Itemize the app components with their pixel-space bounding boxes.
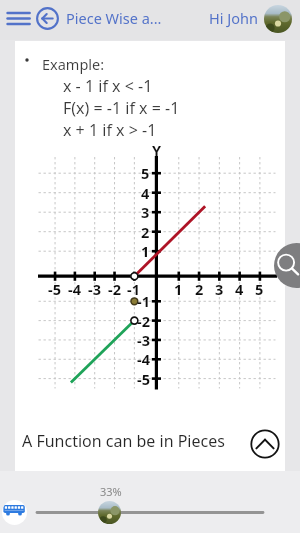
staticText: A Function can be in Pieces (22, 430, 249, 452)
staticText: 3 (215, 279, 224, 299)
staticText: 2 (141, 222, 150, 242)
staticText: Example: (42, 54, 105, 74)
button[interactable]: Lesson (2, 500, 27, 525)
staticText: -1 (127, 279, 140, 299)
staticText: 5 (255, 279, 264, 299)
staticText: x - 1 if x < -1 (63, 75, 153, 97)
staticText: 5 (141, 163, 150, 183)
staticText: -5 (48, 279, 61, 299)
staticText: -2 (108, 279, 121, 299)
button[interactable]: Piece Wise a... (66, 8, 162, 28)
staticText: 2 (195, 279, 204, 299)
staticText: 33% (100, 484, 122, 499)
staticText: Y (152, 140, 162, 160)
button[interactable]: Progress (98, 501, 121, 524)
staticText: 4 (235, 279, 244, 299)
staticText: F(x) = -1 if x = -1 (63, 97, 180, 119)
staticText: -4 (137, 349, 150, 369)
staticText: -5 (137, 369, 150, 389)
staticText: 3 (141, 202, 150, 222)
staticText: 1 (174, 279, 183, 299)
button[interactable]: Profile (264, 5, 292, 33)
staticText: -3 (137, 330, 150, 350)
button[interactable]: A Function can be in Pieces (15, 412, 285, 470)
staticText: -1 (137, 291, 150, 311)
staticText: -2 (137, 311, 150, 331)
staticText: -4 (68, 279, 81, 299)
staticText: 1 (141, 241, 150, 261)
staticText: 4 (141, 183, 150, 203)
button[interactable]: Search (274, 243, 300, 288)
button[interactable]: Menu (3, 4, 34, 35)
staticText: -3 (88, 279, 101, 299)
button[interactable]: Hi John (209, 8, 258, 28)
button[interactable]: Back (36, 7, 59, 30)
staticText: x + 1 if x > -1 (63, 119, 157, 141)
